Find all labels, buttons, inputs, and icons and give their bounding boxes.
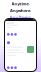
staticText: Any Device. xyxy=(9,15,31,20)
staticText: Anywhere. xyxy=(10,8,31,13)
staticText: Anytime. xyxy=(11,1,29,6)
